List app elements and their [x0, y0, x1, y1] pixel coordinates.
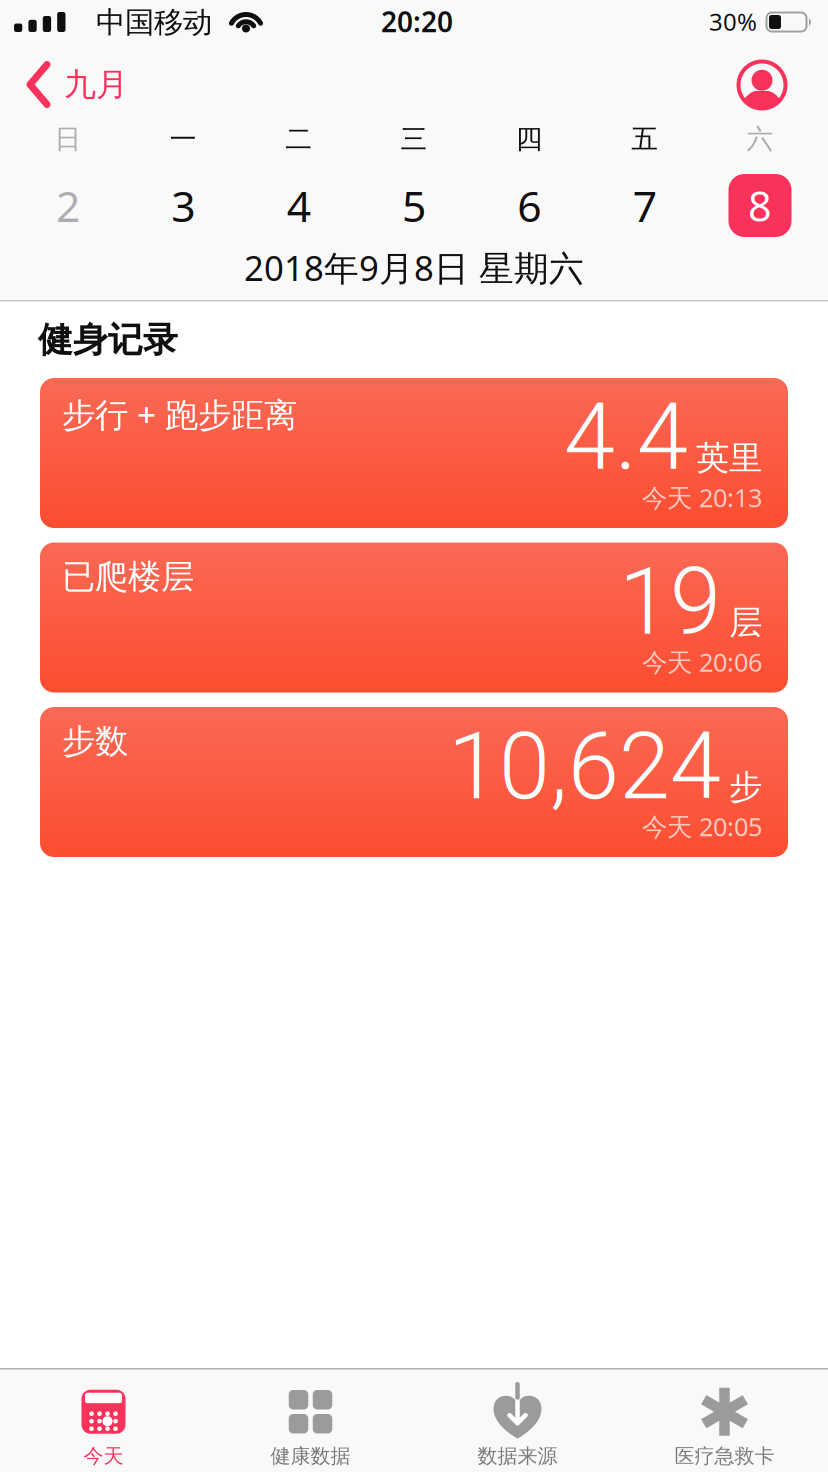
- button[interactable]: 5: [379, 174, 449, 237]
- staticText: 步数: [62, 721, 128, 762]
- staticText: 英里: [696, 438, 762, 479]
- staticText: 8: [748, 178, 772, 233]
- staticText: 2018年9月8日 星期六: [244, 244, 584, 290]
- staticText: 健身记录: [38, 319, 178, 361]
- button[interactable]: 健康数据: [270, 1390, 350, 1468]
- button[interactable]: 数据来源: [477, 1390, 557, 1468]
- staticText: 今天 20:05: [642, 809, 762, 843]
- button[interactable]: 步数: [40, 707, 788, 857]
- staticText: 步: [729, 767, 762, 808]
- staticText: 20:20: [381, 3, 453, 40]
- button[interactable]: 7: [610, 174, 680, 237]
- staticText: 10,624: [448, 713, 721, 821]
- staticText: 二: [285, 123, 312, 155]
- staticText: 4.4: [564, 384, 688, 492]
- staticText: 中国移动: [96, 4, 212, 40]
- staticText: 四: [516, 123, 543, 155]
- staticText: 五: [631, 123, 658, 155]
- staticText: 7: [633, 177, 657, 234]
- button[interactable]: 4: [264, 174, 334, 237]
- staticText: 九月: [64, 65, 128, 104]
- staticText: 6: [517, 177, 541, 234]
- staticText: 已爬楼层: [62, 556, 194, 597]
- button[interactable]: [736, 59, 787, 110]
- staticText: 医疗急救卡: [674, 1444, 774, 1468]
- button[interactable]: 3: [148, 174, 218, 237]
- staticText: 今天 20:13: [642, 480, 762, 514]
- staticText: 4: [287, 177, 311, 234]
- button[interactable]: 步行 + 跑步距离: [40, 378, 788, 528]
- staticText: 健康数据: [270, 1444, 350, 1468]
- staticText: 2: [56, 177, 80, 234]
- staticText: 日: [54, 123, 81, 155]
- staticText: 30%: [709, 6, 757, 37]
- staticText: 六: [746, 123, 773, 155]
- staticText: 19: [619, 548, 721, 656]
- button[interactable]: 2: [33, 174, 103, 237]
- button[interactable]: 6: [494, 174, 564, 237]
- staticText: 今天: [83, 1444, 123, 1468]
- staticText: 一: [170, 123, 197, 155]
- button[interactable]: 今天: [79, 1390, 127, 1468]
- staticText: 5: [402, 177, 426, 234]
- staticText: 步行 + 跑步距离: [62, 392, 297, 436]
- button[interactable]: 已爬楼层: [40, 542, 788, 692]
- staticText: 今天 20:06: [642, 645, 762, 679]
- staticText: 数据来源: [477, 1444, 557, 1468]
- button[interactable]: 8: [728, 174, 791, 237]
- staticText: 3: [171, 177, 195, 234]
- button[interactable]: 医疗急救卡: [674, 1390, 774, 1468]
- staticText: 三: [400, 123, 427, 155]
- button[interactable]: 九月: [26, 61, 128, 108]
- staticText: 层: [729, 602, 762, 643]
